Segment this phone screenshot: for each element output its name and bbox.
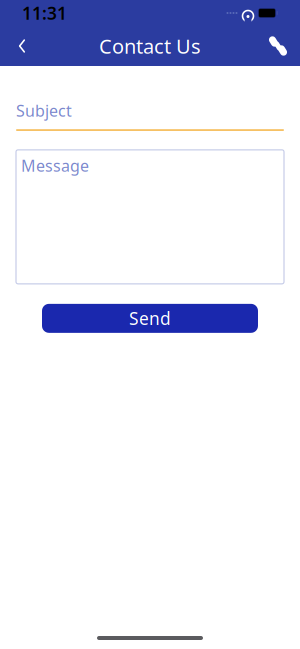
staticText: Send bbox=[129, 307, 171, 330]
button[interactable]: Subject bbox=[16, 100, 284, 131]
staticText: 11:31 bbox=[22, 1, 67, 24]
button[interactable]: Message bbox=[16, 150, 284, 284]
staticText: Message bbox=[21, 155, 89, 176]
staticText: Contact Us bbox=[99, 33, 201, 59]
button[interactable]: Back bbox=[0, 26, 44, 66]
staticText: Subject bbox=[16, 100, 72, 121]
button[interactable]: Send bbox=[42, 304, 258, 333]
button[interactable]: Call bbox=[256, 26, 300, 66]
